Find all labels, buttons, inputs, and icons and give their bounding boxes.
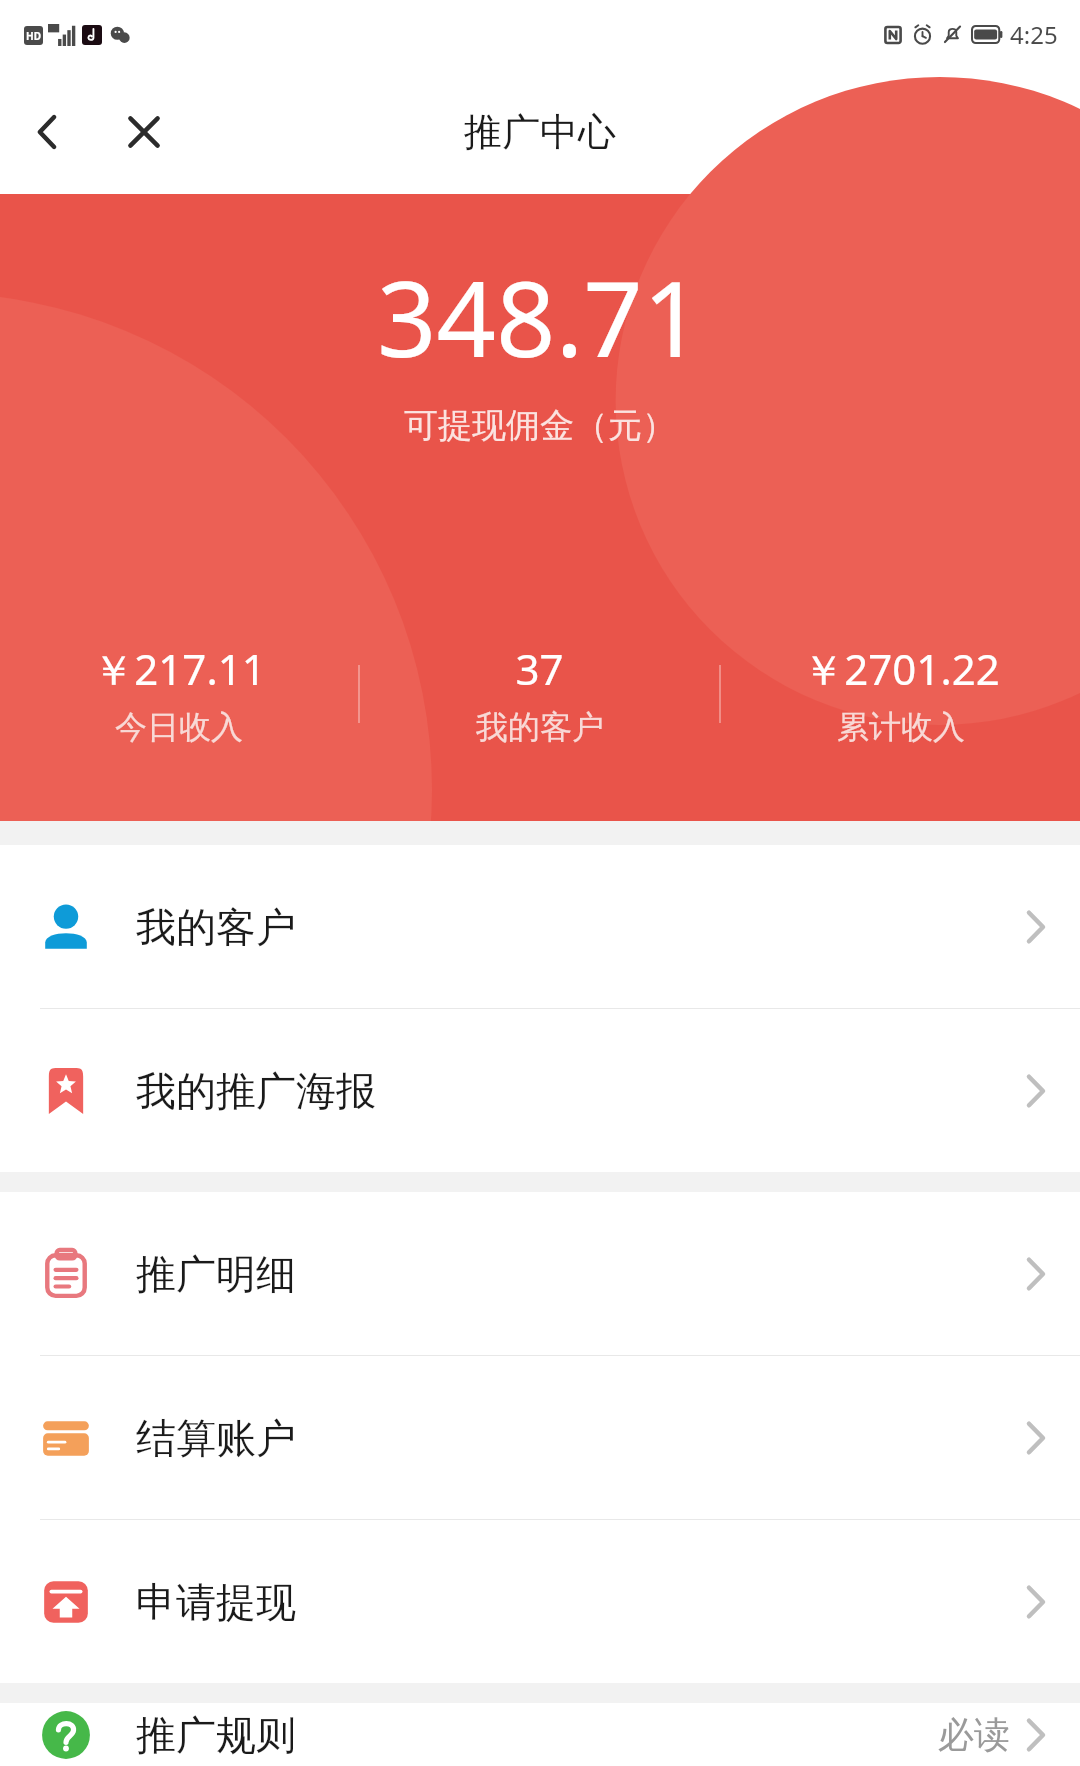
staticText: 推广中心 <box>464 108 616 156</box>
staticText: 申请提现 <box>136 1577 296 1627</box>
button[interactable]: ￥2701.22 <box>721 640 1080 747</box>
staticText: 结算账户 <box>136 1413 296 1463</box>
button[interactable]: More options <box>980 82 1080 182</box>
button[interactable]: 推广明细 <box>0 1192 1080 1355</box>
staticText: 我的客户 <box>136 902 296 952</box>
staticText: 必读 <box>938 1712 1010 1757</box>
button[interactable]: Close <box>96 84 192 180</box>
staticText: 348.71 <box>377 246 703 388</box>
staticText: 累计收入 <box>837 707 965 747</box>
staticText: 4:25 <box>1010 18 1058 51</box>
staticText: 我的推广海报 <box>136 1066 376 1116</box>
staticText: 今日收入 <box>115 707 243 747</box>
staticText: ￥217.11 <box>92 640 266 697</box>
button[interactable]: 推广规则 <box>0 1703 1080 1766</box>
button[interactable]: ￥217.11 <box>0 640 358 747</box>
button[interactable]: 结算账户 <box>0 1356 1080 1519</box>
staticText: 37 <box>515 640 564 697</box>
staticText: 推广明细 <box>136 1249 296 1299</box>
staticText: HD <box>26 29 41 43</box>
staticText: ￥2701.22 <box>802 640 1000 697</box>
staticText: 可提现佣金（元） <box>404 404 676 447</box>
button[interactable]: 37 <box>360 640 719 747</box>
button[interactable]: Back <box>0 84 96 180</box>
staticText: 我的客户 <box>476 707 604 747</box>
staticText: 推广规则 <box>136 1710 296 1760</box>
button[interactable]: 我的推广海报 <box>0 1009 1080 1172</box>
button[interactable]: 申请提现 <box>0 1520 1080 1683</box>
button[interactable]: 我的客户 <box>0 845 1080 1008</box>
